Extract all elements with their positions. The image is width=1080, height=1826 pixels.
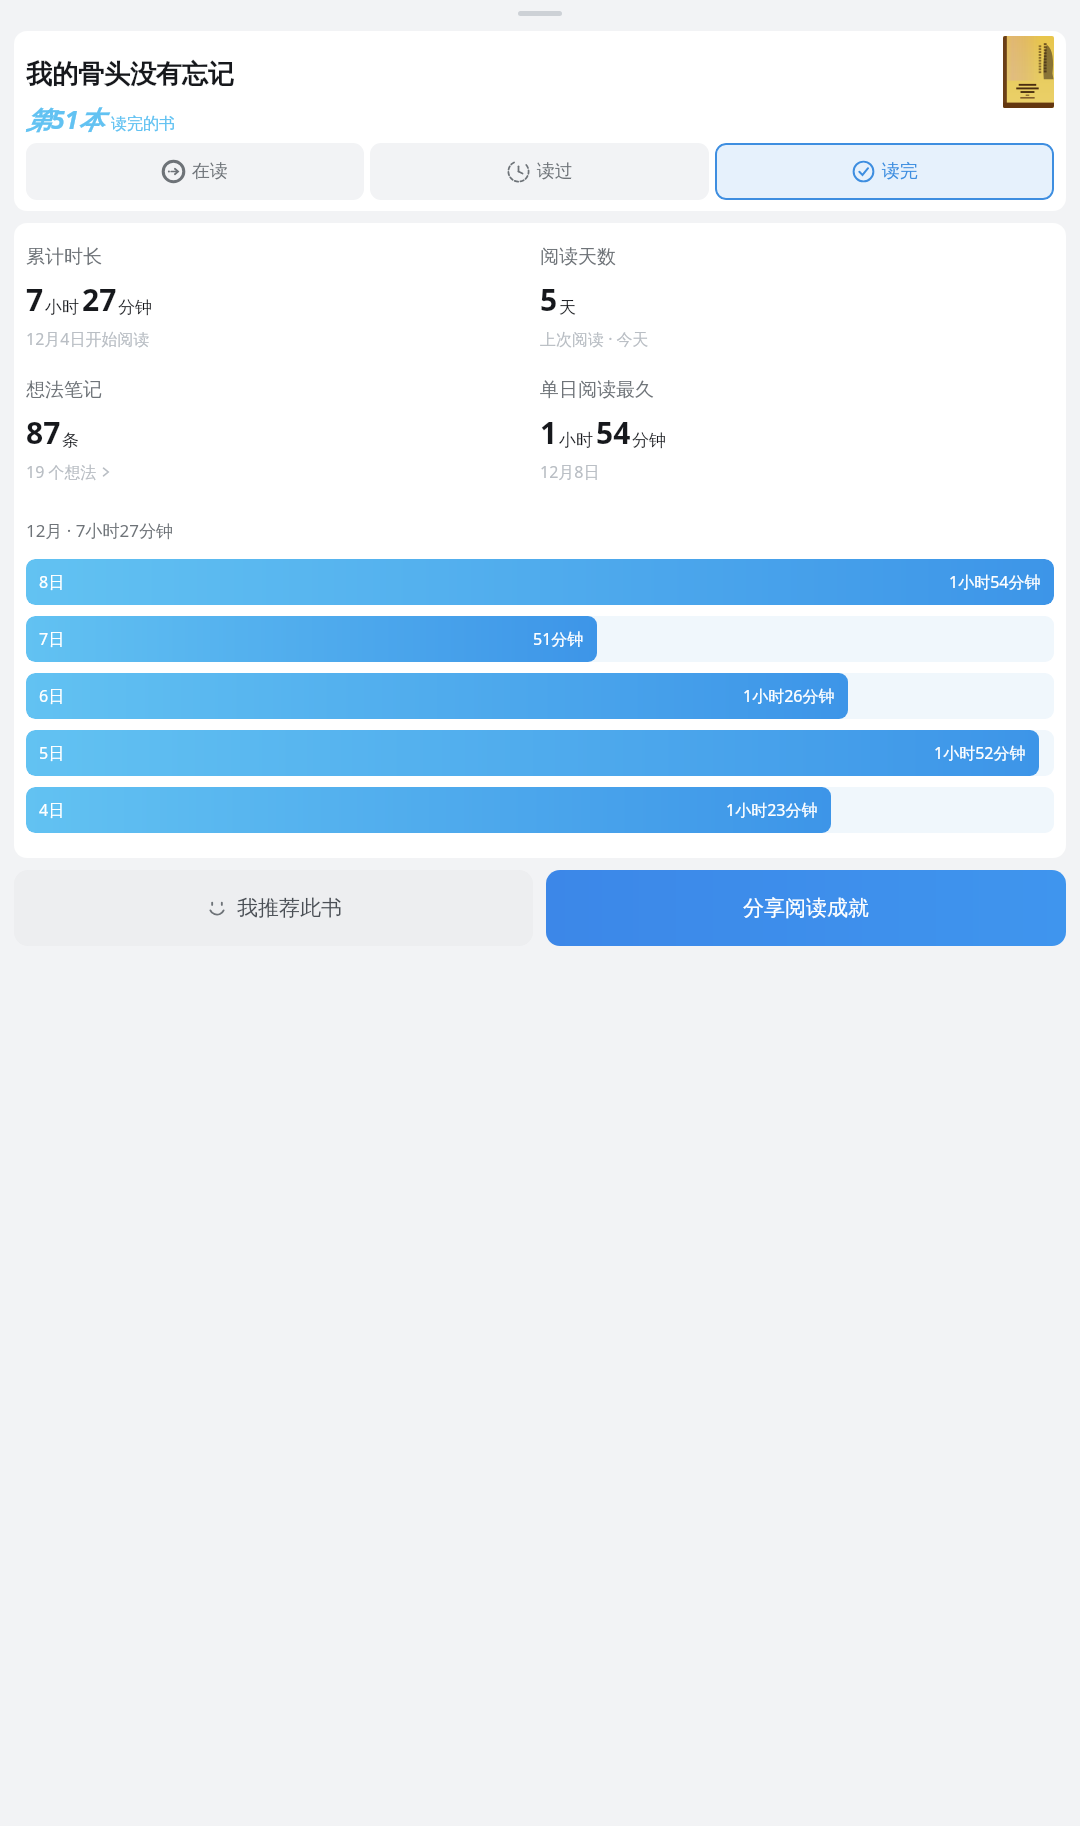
button[interactable]: 我推荐此书	[14, 870, 533, 946]
staticText: 小时	[559, 430, 593, 451]
staticText: 天	[559, 297, 576, 318]
button[interactable]: 6日	[26, 673, 1054, 719]
button[interactable]: 分享阅读成就	[546, 870, 1066, 946]
staticText: 54	[596, 412, 631, 453]
staticText: 分享阅读成就	[743, 895, 869, 921]
staticText: 4日	[39, 799, 65, 821]
button[interactable]: 读过	[370, 143, 709, 200]
button[interactable]: 8日	[26, 559, 1054, 605]
staticText: 分钟	[118, 297, 152, 318]
button[interactable]: 在读	[26, 143, 364, 200]
button[interactable]: 7日	[26, 616, 1054, 662]
staticText: 1小时52分钟	[934, 742, 1026, 764]
staticText: 51分钟	[533, 628, 584, 650]
button[interactable]: 读完	[715, 143, 1054, 200]
staticText: 1	[540, 412, 558, 453]
staticText: 19 个想法	[26, 461, 97, 483]
staticText: 8日	[39, 571, 65, 593]
staticText: 1小时26分钟	[743, 685, 835, 707]
staticText: 5日	[39, 742, 65, 764]
staticText: 阅读天数	[540, 245, 616, 269]
staticText: 7日	[39, 628, 65, 650]
staticText: 我推荐此书	[237, 895, 342, 921]
staticText: 87	[26, 412, 61, 453]
staticText: 分钟	[632, 430, 666, 451]
staticText: 5	[540, 279, 558, 320]
staticText: 上次阅读 · 今天	[540, 328, 649, 350]
staticText: 读完	[882, 160, 918, 183]
staticText: 我的骨头没有忘记	[26, 58, 234, 91]
staticText: 读完的书	[111, 114, 175, 134]
staticText: 12月 · 7小时27分钟	[26, 519, 174, 542]
staticText: 想法笔记	[26, 378, 102, 402]
staticText: 小时	[45, 297, 79, 318]
staticText: 在读	[192, 160, 228, 183]
staticText: 7	[26, 279, 44, 320]
staticText: 累计时长	[26, 245, 102, 269]
staticText: 读过	[537, 160, 573, 183]
button[interactable]: 5日	[26, 730, 1054, 776]
staticText: 27	[82, 279, 117, 320]
staticText: 6日	[39, 685, 65, 707]
staticText: 1小时23分钟	[726, 799, 818, 821]
staticText: 条	[62, 430, 79, 451]
staticText: 第51本	[26, 102, 104, 136]
staticText: 1小时54分钟	[949, 571, 1041, 593]
button[interactable]: 4日	[26, 787, 1054, 833]
staticText: 单日阅读最久	[540, 378, 654, 402]
button[interactable]: 19 个想法	[26, 461, 111, 483]
staticText: 12月8日	[540, 461, 600, 483]
staticText: 12月4日开始阅读	[26, 328, 150, 350]
